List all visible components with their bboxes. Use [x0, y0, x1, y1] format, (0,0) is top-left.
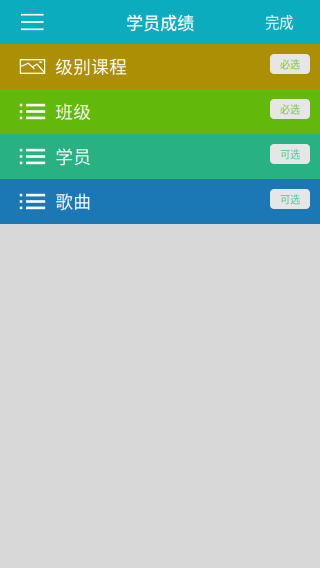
button[interactable]: 级别课程 [0, 44, 320, 89]
button[interactable]: 班级 [0, 89, 320, 134]
button[interactable]: 歌曲 [0, 179, 320, 224]
staticText: 学员成绩 [126, 10, 194, 34]
staticText: 完成 [265, 11, 293, 32]
button[interactable]: 学员 [0, 134, 320, 179]
staticText: 必选 [280, 57, 300, 71]
button[interactable]: 完成 [257, 0, 301, 44]
staticText: 级别课程 [55, 53, 127, 78]
staticText: 可选 [280, 192, 300, 206]
staticText: 学员 [55, 143, 91, 168]
staticText: 必选 [280, 102, 300, 116]
staticText: 歌曲 [55, 188, 91, 213]
button[interactable]: Menu [10, 0, 54, 44]
staticText: 可选 [280, 147, 300, 161]
staticText: 班级 [55, 98, 91, 123]
